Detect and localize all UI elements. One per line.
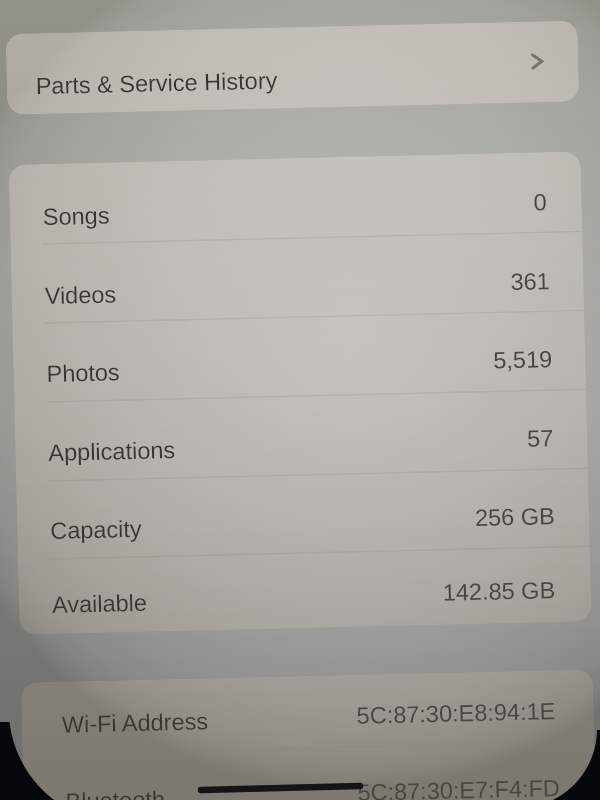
- staticText: Applications: [48, 437, 176, 466]
- staticText: Photos: [46, 359, 121, 387]
- staticText: Available: [52, 590, 147, 618]
- button[interactable]: [16, 464, 590, 556]
- staticText: Songs: [42, 202, 110, 230]
- staticText: 256 GB: [475, 503, 555, 531]
- button[interactable]: [21, 669, 594, 761]
- staticText: 5C:87:30:E8:94:1E: [356, 698, 556, 729]
- button[interactable]: [9, 151, 582, 243]
- staticText: 0: [533, 189, 548, 215]
- button[interactable]: [14, 386, 588, 478]
- button[interactable]: [18, 543, 591, 635]
- staticText: Wi-Fi Address: [61, 708, 209, 738]
- staticText: Parts & Service History: [35, 67, 278, 99]
- button[interactable]: [23, 747, 596, 800]
- button[interactable]: [12, 308, 586, 400]
- staticText: Bluetooth: [65, 786, 166, 800]
- staticText: 142.85 GB: [442, 577, 556, 606]
- staticText: 5,519: [493, 346, 553, 373]
- staticText: Capacity: [50, 516, 142, 544]
- button[interactable]: [5, 20, 579, 115]
- staticText: 5C:87:30:E7:F4:FD: [357, 775, 561, 800]
- button[interactable]: [10, 229, 584, 321]
- other: Parts & Service History: [531, 53, 543, 69]
- staticText: 361: [510, 268, 551, 295]
- staticText: Videos: [44, 281, 117, 309]
- staticText: 57: [527, 425, 554, 452]
